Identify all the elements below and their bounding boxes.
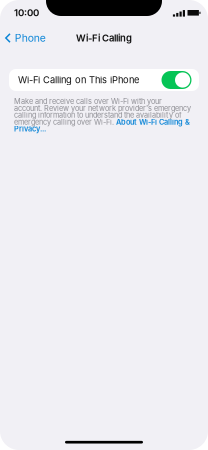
staticText: Wi-Fi Calling (76, 32, 132, 44)
staticText: Phone (15, 32, 46, 44)
button[interactable]: Phone (0, 28, 46, 48)
staticText: Make and receive calls over Wi-Fi with y… (14, 97, 191, 133)
staticText: Wi-Fi Calling on This iPhone (18, 74, 139, 86)
staticText: 10:00 (14, 7, 39, 19)
button[interactable]: Wi-Fi Calling on This iPhone (9, 69, 199, 91)
